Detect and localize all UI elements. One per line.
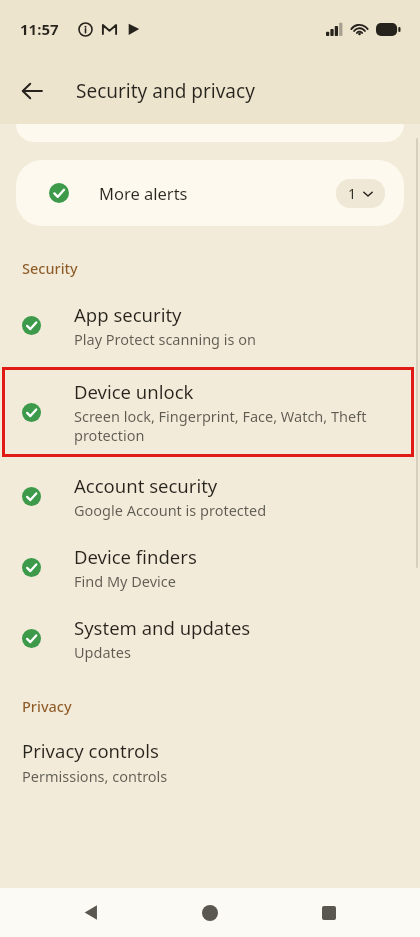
button[interactable]: Privacy controls — [0, 738, 420, 786]
staticText: More alerts — [99, 182, 188, 204]
button[interactable]: Back — [63, 888, 119, 937]
button[interactable]: Back — [10, 69, 54, 113]
button[interactable]: Device finders — [0, 544, 420, 591]
staticText: Google Account is protected — [74, 500, 267, 520]
staticText: 11:57 — [20, 19, 59, 39]
button[interactable]: System and updates — [0, 615, 420, 662]
staticText: Find My Device — [74, 571, 176, 591]
staticText: Play Protect scanning is on — [74, 329, 256, 349]
staticText: Privacy controls — [22, 738, 159, 763]
button[interactable]: Recents — [301, 888, 357, 937]
staticText: Security — [22, 258, 78, 278]
button[interactable]: Account security — [0, 473, 420, 520]
staticText: Device finders — [74, 544, 197, 569]
button[interactable]: Home — [182, 888, 238, 937]
button[interactable]: 1 — [336, 179, 385, 208]
staticText: System and updates — [74, 615, 251, 640]
staticText: Privacy — [22, 696, 72, 716]
button[interactable]: More alerts — [16, 160, 404, 226]
staticText: Account security — [74, 473, 218, 498]
staticText: 1 — [348, 184, 357, 203]
button[interactable]: App security — [0, 302, 420, 349]
button[interactable]: Device unlock — [2, 367, 414, 457]
staticText: Permissions, controls — [22, 766, 168, 786]
staticText: Updates — [74, 642, 131, 662]
staticText: App security — [74, 302, 182, 327]
staticText: Screen lock, Fingerprint, Face, Watch, T… — [74, 406, 367, 445]
staticText: Security and privacy — [76, 78, 255, 104]
staticText: Device unlock — [74, 379, 194, 404]
